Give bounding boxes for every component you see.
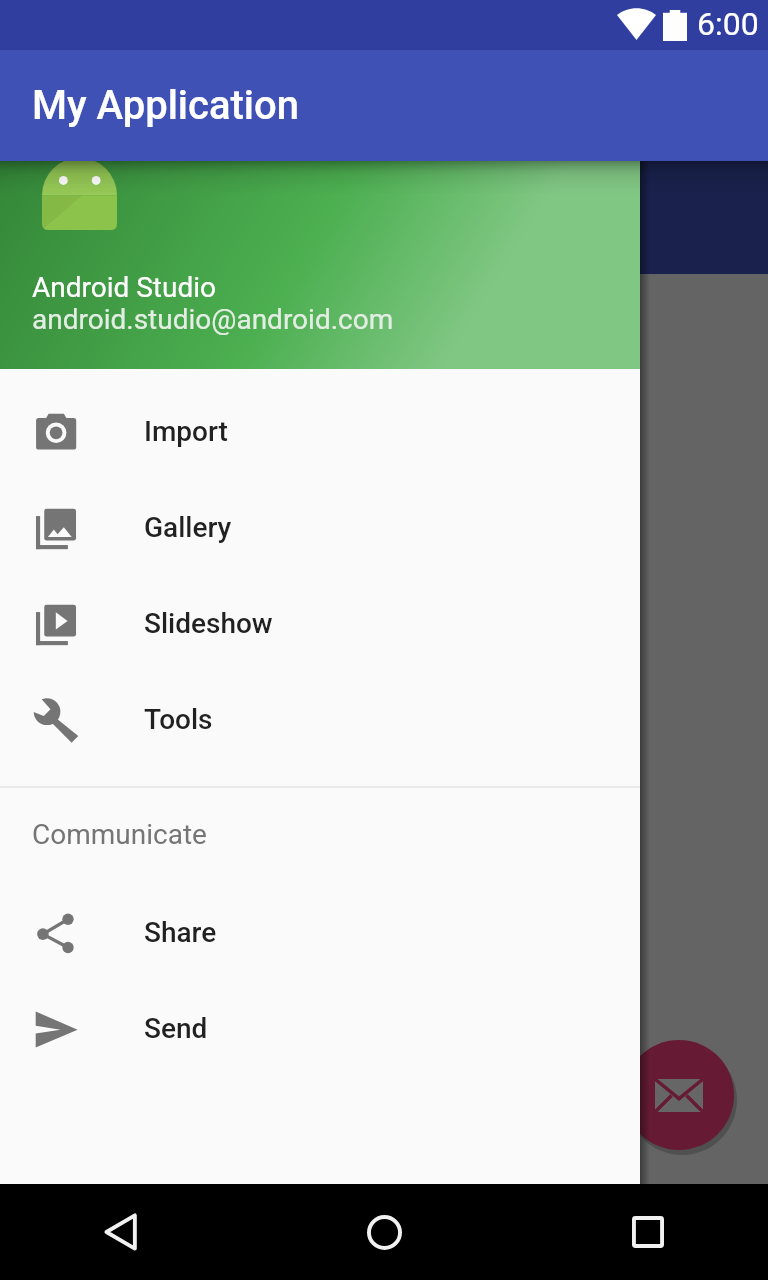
staticText: My Application bbox=[32, 82, 299, 129]
button[interactable]: Slideshow bbox=[0, 575, 640, 671]
button[interactable]: Tools bbox=[0, 671, 640, 767]
button[interactable]: Back bbox=[72, 1184, 168, 1280]
staticText: Tools bbox=[144, 703, 213, 736]
staticText: 6:00 bbox=[697, 5, 759, 43]
button[interactable]: Share bbox=[0, 884, 640, 980]
staticText: Slideshow bbox=[144, 607, 273, 640]
staticText: Communicate bbox=[32, 818, 207, 851]
staticText: Android Studio bbox=[32, 271, 217, 304]
button[interactable]: Compose email bbox=[624, 1040, 734, 1150]
button[interactable]: Recent apps bbox=[600, 1184, 696, 1280]
staticText: Share bbox=[144, 916, 217, 949]
staticText: Gallery bbox=[144, 511, 232, 544]
button[interactable]: Import bbox=[0, 383, 640, 479]
button[interactable]: Gallery bbox=[0, 479, 640, 575]
staticText: Send bbox=[144, 1012, 208, 1045]
staticText: Import bbox=[144, 415, 228, 448]
staticText: android.studio@android.com bbox=[32, 303, 394, 336]
button[interactable]: Send bbox=[0, 980, 640, 1076]
button[interactable]: Home bbox=[336, 1184, 432, 1280]
